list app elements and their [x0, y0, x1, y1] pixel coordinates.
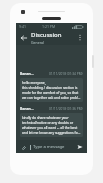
button[interactable]: Banani Software Developers: [20, 71, 83, 102]
staticText: Banani Software Developers: [20, 71, 34, 76]
button[interactable]: More options: [75, 33, 84, 42]
staticText: Banani Software Developers: [20, 106, 34, 111]
staticText: hello everyone, this shedding / discussi…: [22, 80, 81, 100]
staticText: 01/11/2018 (01:34 PM): [49, 72, 83, 76]
staticText: Discussion: [31, 31, 62, 39]
button[interactable]: Discussion: [31, 31, 75, 45]
staticText: Type a message: [33, 144, 65, 150]
staticText: 1:21 PM: [42, 24, 56, 29]
button[interactable]: Banani Software Developers: [20, 106, 83, 137]
button[interactable]: Back: [19, 33, 28, 42]
staticText: kindly do share whatever your technical/…: [22, 115, 81, 135]
staticText: 01/11/2018 (01:36 PM): [49, 107, 83, 111]
staticText: General: [31, 40, 44, 45]
staticText: 9:41: [19, 24, 26, 29]
button[interactable]: Type a message: [30, 140, 75, 153]
button[interactable]: Send: [75, 142, 84, 151]
button[interactable]: Attach file: [19, 143, 27, 151]
